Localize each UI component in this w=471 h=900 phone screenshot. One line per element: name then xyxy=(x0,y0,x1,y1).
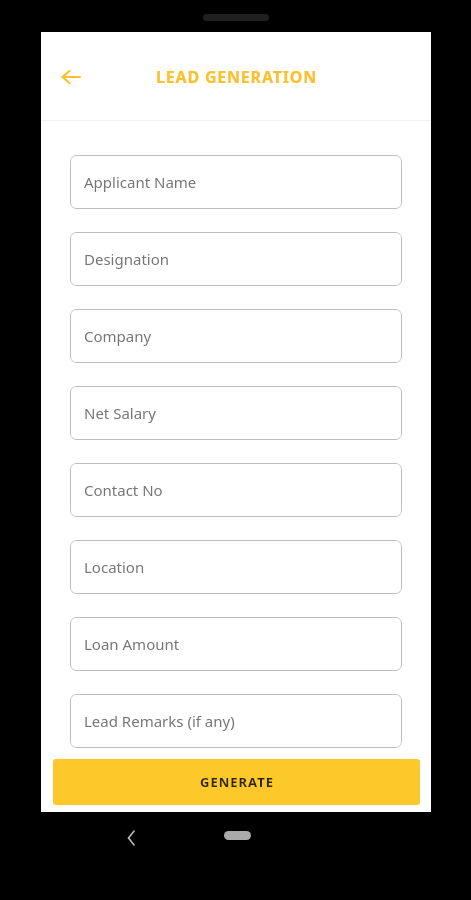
button[interactable]: Location xyxy=(70,540,402,594)
button[interactable]: Designation xyxy=(70,232,402,286)
staticText: Net Salary xyxy=(84,403,156,423)
button[interactable]: Home xyxy=(224,831,251,840)
button[interactable]: Loan Amount xyxy=(70,617,402,671)
button[interactable]: Back xyxy=(49,55,93,99)
button[interactable]: Back xyxy=(120,826,144,850)
staticText: Applicant Name xyxy=(84,172,197,192)
button[interactable]: Lead Remarks (if any) xyxy=(70,694,402,748)
staticText: Designation xyxy=(84,249,170,269)
button[interactable]: Contact No xyxy=(70,463,402,517)
staticText: GENERATE xyxy=(200,773,274,791)
staticText: Company xyxy=(84,326,152,346)
button[interactable]: GENERATE xyxy=(53,759,420,805)
staticText: Lead Remarks (if any) xyxy=(84,711,235,731)
staticText: Loan Amount xyxy=(84,634,180,654)
button[interactable]: Net Salary xyxy=(70,386,402,440)
staticText: LEAD GENERATION xyxy=(156,66,317,88)
staticText: Contact No xyxy=(84,480,163,500)
button[interactable]: Company xyxy=(70,309,402,363)
button[interactable]: Applicant Name xyxy=(70,155,402,209)
staticText: Location xyxy=(84,557,145,577)
